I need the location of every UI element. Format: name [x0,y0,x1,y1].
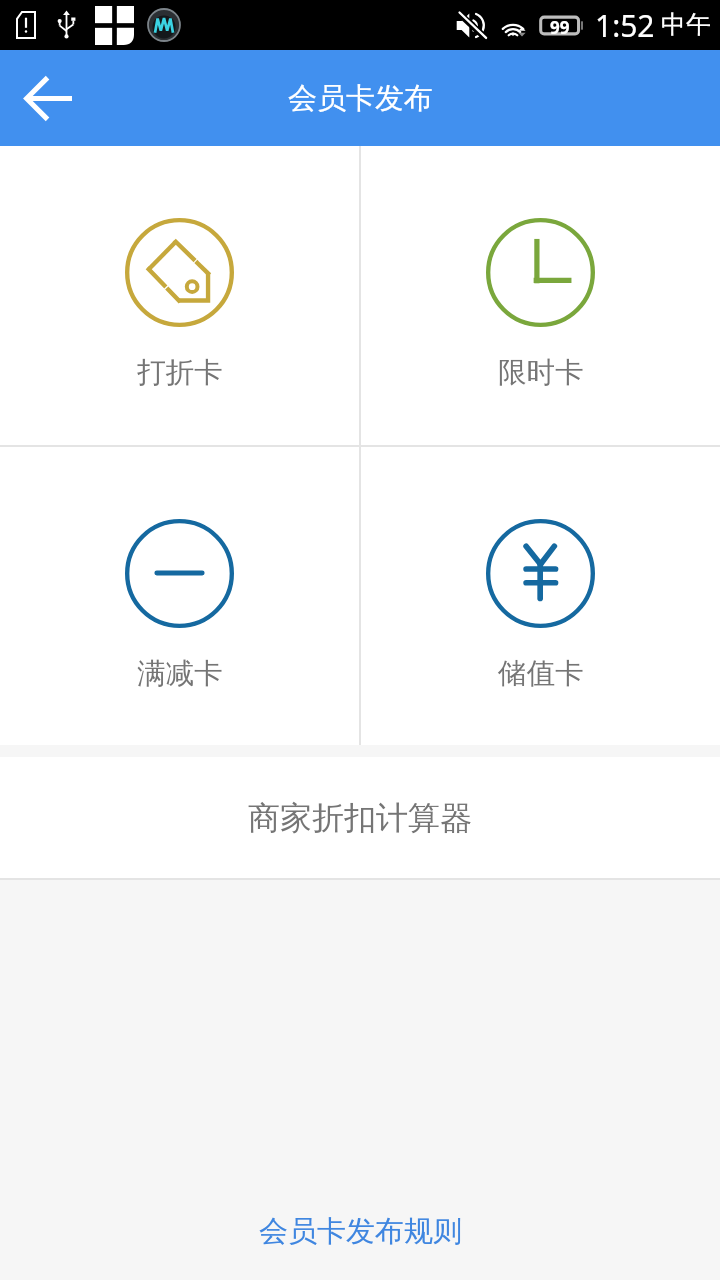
button[interactable]: Back [10,60,86,136]
staticText: 储值卡 [498,656,584,692]
staticText: 限时卡 [498,355,584,391]
staticText: 1:52 [595,5,655,46]
button[interactable]: 限时卡 [361,146,720,445]
staticText: 会员卡发布 [288,80,433,117]
button[interactable]: 储值卡 [361,447,720,745]
staticText: 满减卡 [137,656,223,692]
staticText: 中午 [661,9,711,40]
button[interactable]: 会员卡发布规则 [0,1182,720,1280]
staticText: 商家折扣计算器 [248,798,472,838]
staticText: 99 [550,16,570,35]
button[interactable]: 满减卡 [0,447,359,745]
button[interactable]: 商家折扣计算器 [0,757,720,878]
button[interactable]: 打折卡 [0,146,359,445]
staticText: 打折卡 [137,355,223,391]
staticText: 会员卡发布规则 [259,1213,462,1250]
